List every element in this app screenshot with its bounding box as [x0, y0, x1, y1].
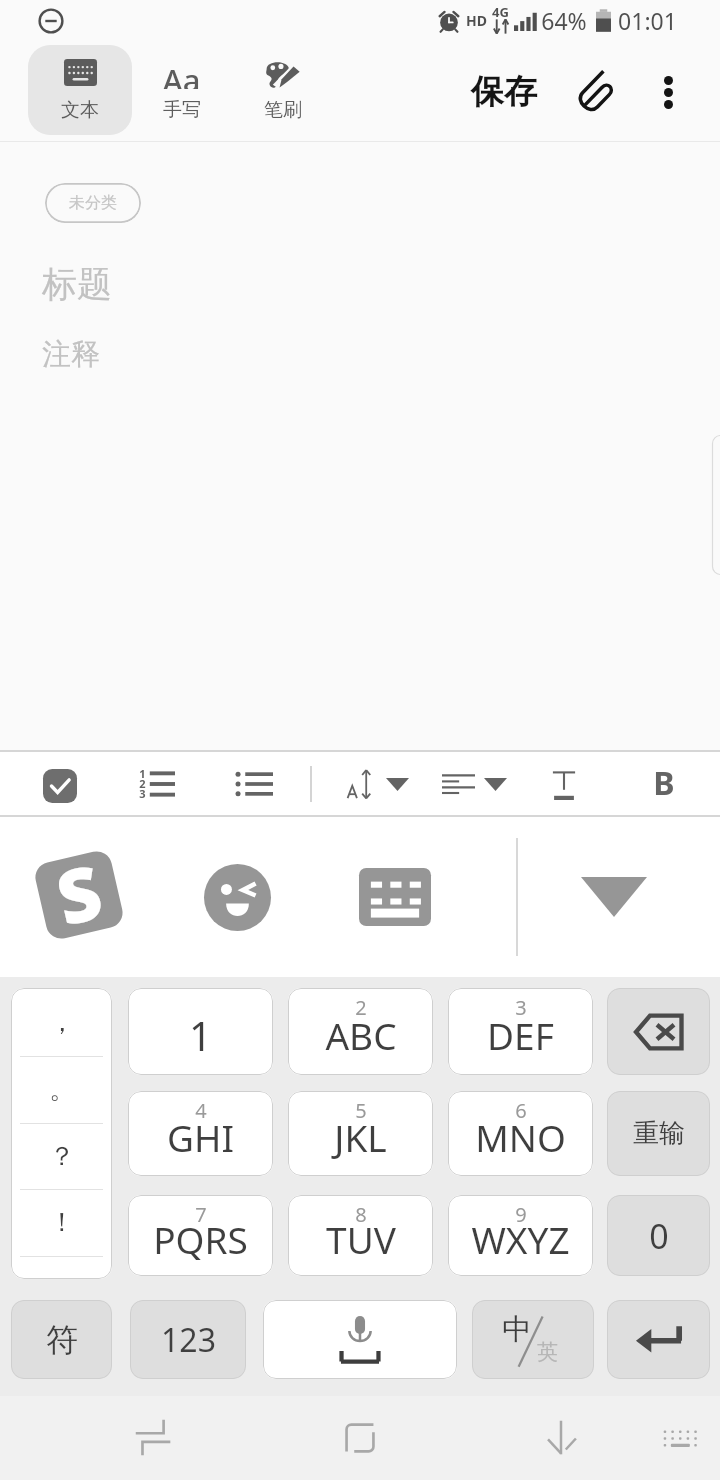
staticText: 8 [355, 1201, 367, 1228]
button[interactable]: PQRS [128, 1195, 273, 1276]
button[interactable]: 保存 [458, 64, 550, 120]
button[interactable]: 未分类 [45, 183, 141, 223]
button[interactable] [263, 1300, 457, 1379]
staticText: Aa [162, 59, 201, 89]
button[interactable]: Do not disturb [38, 8, 64, 34]
staticText: 3 [515, 994, 527, 1021]
button[interactable]: 笔刷 [240, 45, 326, 135]
button[interactable]: JKL [288, 1091, 433, 1176]
staticText: 文本 [61, 98, 99, 122]
button[interactable]: ， [11, 988, 112, 1279]
button[interactable]: Numbered list [133, 758, 183, 808]
button[interactable] [607, 988, 710, 1075]
button[interactable]: Checklist [36, 762, 84, 810]
staticText: 64% [541, 5, 587, 36]
staticText: 保存 [471, 71, 537, 113]
staticText: 4 [195, 1097, 207, 1124]
button[interactable]: Bulleted list [230, 758, 280, 808]
staticText: 6 [515, 1097, 527, 1124]
button[interactable]: Text size [338, 756, 422, 810]
staticText: 1 [139, 766, 146, 781]
staticText: MNO [475, 1112, 566, 1162]
staticText: 9 [515, 1201, 527, 1228]
button[interactable]: 中 [472, 1300, 594, 1379]
button[interactable]: Recent apps [130, 1414, 178, 1462]
button[interactable]: MNO [448, 1091, 593, 1176]
staticText: 中 [502, 1311, 531, 1348]
staticText: GHI [167, 1112, 234, 1162]
staticText: 3 [139, 786, 146, 801]
button[interactable]: 1 [128, 988, 273, 1075]
staticText: 2 [139, 776, 146, 791]
button[interactable]: More options [640, 64, 696, 120]
staticText: PQRS [153, 1214, 248, 1264]
button[interactable]: Attach file [568, 64, 624, 120]
button[interactable]: Switch keyboard [663, 1428, 697, 1448]
button[interactable]: Hide keyboard [537, 1414, 585, 1462]
button[interactable]: ABC [288, 988, 433, 1075]
staticText: 7 [195, 1201, 207, 1228]
staticText: 符 [46, 1320, 78, 1360]
button[interactable]: Aa [138, 45, 224, 135]
staticText: ！ [49, 1206, 75, 1239]
staticText: TUV [326, 1214, 396, 1264]
button[interactable]: DEF [448, 988, 593, 1075]
button[interactable]: Alignment [433, 756, 517, 810]
button[interactable] [607, 1300, 710, 1379]
staticText: B [653, 761, 675, 805]
button[interactable]: 文本 [28, 45, 132, 135]
staticText: 。 [49, 1073, 75, 1106]
button[interactable]: Hide keyboard [581, 877, 647, 917]
staticText: 0 [649, 1213, 669, 1259]
staticText: 笔刷 [264, 98, 302, 122]
staticText: ABC [325, 1010, 397, 1060]
staticText: 123 [161, 1318, 216, 1362]
staticText: 5 [355, 1097, 367, 1124]
button[interactable]: 符 [11, 1300, 112, 1379]
button[interactable]: Emoji [204, 864, 271, 931]
staticText: 英 [537, 1339, 558, 1365]
button[interactable]: Sogou settings [31, 847, 127, 943]
staticText: ？ [49, 1140, 75, 1173]
staticText: JKL [334, 1112, 387, 1162]
staticText: S [47, 839, 110, 943]
staticText: ， [49, 1006, 75, 1039]
button[interactable]: 123 [130, 1300, 246, 1379]
button[interactable]: Home [336, 1414, 384, 1462]
button[interactable]: Bold [640, 758, 688, 808]
staticText: 4G [492, 3, 509, 21]
button[interactable]: Text style [540, 758, 588, 808]
button[interactable]: GHI [128, 1091, 273, 1176]
staticText: 注释 [42, 336, 100, 373]
staticText: 01:01 [618, 5, 677, 36]
staticText: 标题 [42, 262, 112, 306]
staticText: HD [466, 11, 487, 30]
staticText: DEF [487, 1010, 554, 1060]
button[interactable]: 0 [607, 1195, 710, 1276]
staticText: WXYZ [471, 1214, 570, 1264]
staticText: 2 [355, 994, 367, 1021]
staticText: 未分类 [69, 193, 117, 213]
button[interactable]: Keyboard layout [359, 868, 431, 926]
staticText: 手写 [163, 98, 201, 122]
staticText: 1 [189, 1008, 212, 1062]
button[interactable]: 重输 [607, 1091, 710, 1176]
button[interactable]: TUV [288, 1195, 433, 1276]
button[interactable]: WXYZ [448, 1195, 593, 1276]
staticText: 重输 [633, 1117, 685, 1150]
